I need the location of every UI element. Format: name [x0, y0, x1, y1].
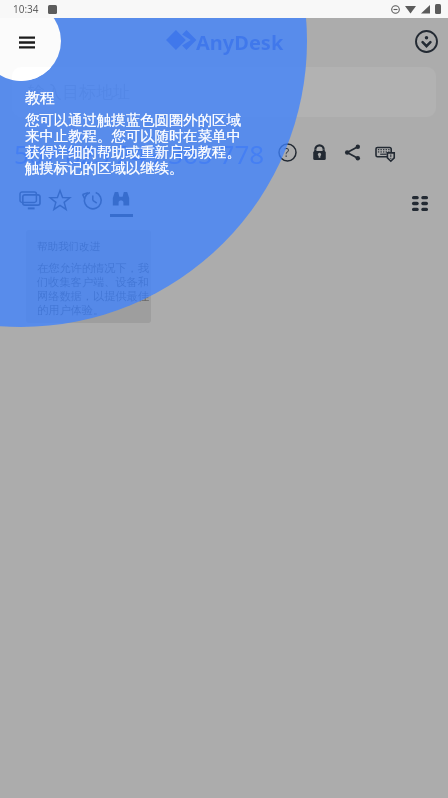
button[interactable]: Share [336, 136, 368, 168]
button[interactable]: Favorites [44, 186, 76, 218]
staticText: ? [284, 144, 290, 160]
button[interactable]: 输入目标地址 [12, 67, 436, 117]
button[interactable]: Menu [7, 22, 47, 62]
button[interactable]: 输入目标地址 [12, 67, 436, 117]
button[interactable]: View mode [404, 187, 436, 219]
button[interactable]: Input [369, 136, 401, 168]
staticText: 您可以通过触摸蓝色圆圈外的区域来中止教程。您可以随时在菜单中获得详细的帮助或重新… [25, 111, 246, 177]
staticText: 507 823 249 365 778 [14, 136, 265, 168]
button[interactable]: Favorites [44, 186, 76, 218]
button[interactable]: Desktops [14, 186, 46, 218]
staticText: 10:34 [13, 2, 39, 16]
button[interactable]: Desktops [14, 186, 46, 218]
staticText: 输入目标地址 [28, 82, 130, 103]
button[interactable]: Privacy [303, 136, 335, 168]
staticText: AnyDesk [196, 29, 284, 56]
button[interactable]: Recent [76, 186, 108, 218]
staticText: 帮助我们改进 [37, 240, 100, 253]
staticText: 在您允许的情况下，我们收集客户端、设备和网络数据，以提供最佳的用户体验。 [37, 261, 149, 317]
button[interactable]: Help [271, 136, 303, 168]
button[interactable]: Menu [7, 22, 47, 62]
button[interactable]: Discovery [105, 186, 137, 218]
button[interactable]: Downloads [407, 22, 446, 61]
button[interactable]: Discovery [105, 186, 137, 218]
button[interactable]: Share [336, 136, 368, 168]
staticText: 在您允许的情况下，我们收集客户端、设备和网络数据，以提供最佳的用户体验。 [37, 261, 149, 317]
staticText: ? [284, 144, 290, 160]
button[interactable]: Downloads [407, 22, 446, 61]
staticText: 教程 [25, 89, 55, 108]
button[interactable]: View mode [404, 187, 436, 219]
button[interactable]: Input [369, 136, 401, 168]
button[interactable]: 帮助我们改进 [26, 230, 151, 323]
staticText: 507 823 249 365 778 [14, 136, 265, 168]
staticText: AnyDesk [196, 29, 284, 56]
button[interactable]: 帮助我们改进 [26, 230, 151, 323]
button[interactable]: Help [271, 136, 303, 168]
staticText: 输入目标地址 [28, 82, 130, 103]
button[interactable]: Recent [76, 186, 108, 218]
button[interactable]: Privacy [303, 136, 335, 168]
staticText: 帮助我们改进 [37, 240, 100, 253]
